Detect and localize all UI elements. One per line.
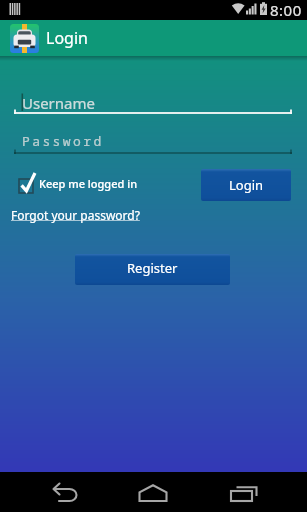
staticText: Login: [229, 176, 264, 194]
staticText: Login: [46, 27, 88, 49]
staticText: Password: [22, 132, 104, 150]
button[interactable]: Keep me logged in: [14, 170, 184, 200]
staticText: Forgot your password?: [11, 207, 140, 223]
button[interactable]: Register: [75, 254, 230, 285]
button[interactable]: [44, 472, 84, 512]
button[interactable]: Forgot your password?: [8, 204, 137, 220]
button[interactable]: [221, 472, 261, 512]
button[interactable]: Password: [14, 128, 292, 156]
button[interactable]: [133, 472, 173, 512]
button[interactable]: Username: [14, 88, 292, 116]
staticText: Username: [22, 93, 95, 113]
staticText: Register: [127, 259, 178, 277]
staticText: Keep me logged in: [39, 176, 138, 191]
button[interactable]: [10, 24, 39, 53]
staticText: 8:00: [270, 0, 302, 20]
button[interactable]: Login: [201, 169, 291, 201]
